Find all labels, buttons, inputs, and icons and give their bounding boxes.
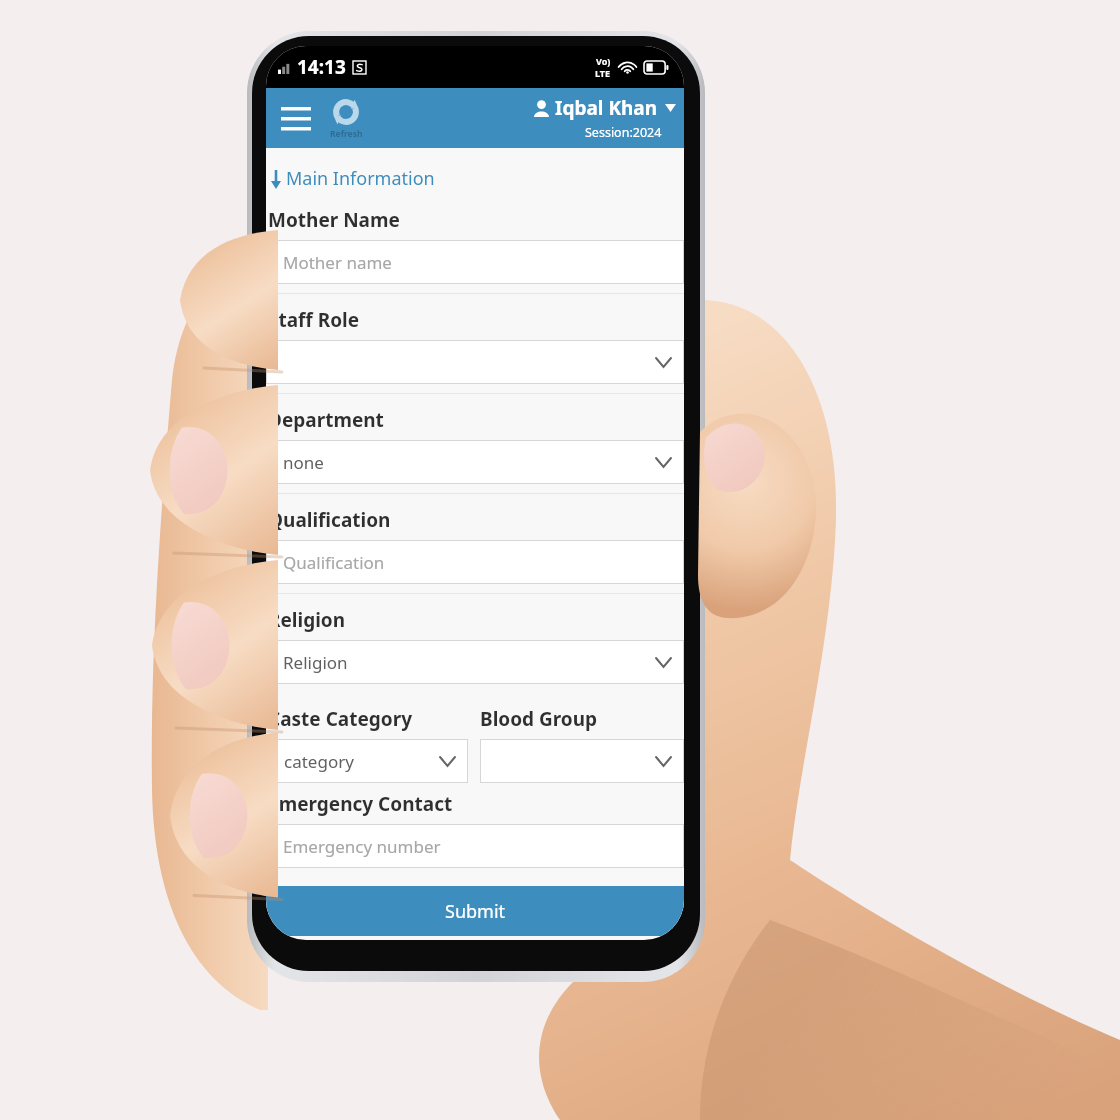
staticText: Session:2024 — [585, 124, 662, 141]
staticText: Mother Name — [268, 207, 400, 233]
staticText: Submit — [445, 899, 506, 924]
staticText: Religion — [283, 651, 348, 674]
button[interactable] — [480, 739, 684, 783]
button[interactable]: Religion — [266, 640, 684, 684]
staticText: Iqbal Khan — [555, 95, 658, 121]
staticText: LTE — [595, 67, 611, 79]
button[interactable]: category — [267, 739, 468, 783]
button[interactable]: Mother name — [266, 240, 684, 284]
staticText: Main Information — [286, 166, 435, 191]
staticText: Emergency number — [283, 835, 441, 858]
staticText: Refresh — [330, 128, 363, 140]
button[interactable]: Iqbal Khan — [533, 95, 676, 141]
button[interactable]: Main Information — [268, 166, 435, 191]
staticText: Qualification — [268, 507, 391, 533]
staticText: category — [284, 750, 354, 773]
staticText: Religion — [268, 607, 346, 633]
staticText: none — [283, 451, 324, 474]
staticText: Staff Role — [268, 307, 360, 333]
button[interactable]: Qualification — [266, 540, 684, 584]
staticText: Qualification — [283, 551, 385, 574]
staticText: Mother name — [283, 251, 392, 274]
staticText: Department — [268, 407, 384, 433]
button[interactable]: Submit — [266, 886, 684, 936]
button[interactable]: Menu — [274, 96, 318, 140]
button[interactable]: Emergency number — [266, 824, 684, 868]
staticText: Blood Group — [480, 706, 598, 732]
button[interactable]: none — [266, 440, 684, 484]
staticText: Emergency Contact — [268, 791, 453, 817]
button[interactable] — [266, 340, 684, 384]
staticText: 14:13 — [297, 54, 346, 80]
button[interactable]: Refresh — [322, 92, 370, 144]
staticText: Caste Category — [268, 706, 413, 732]
staticText: Vo) — [596, 55, 611, 67]
